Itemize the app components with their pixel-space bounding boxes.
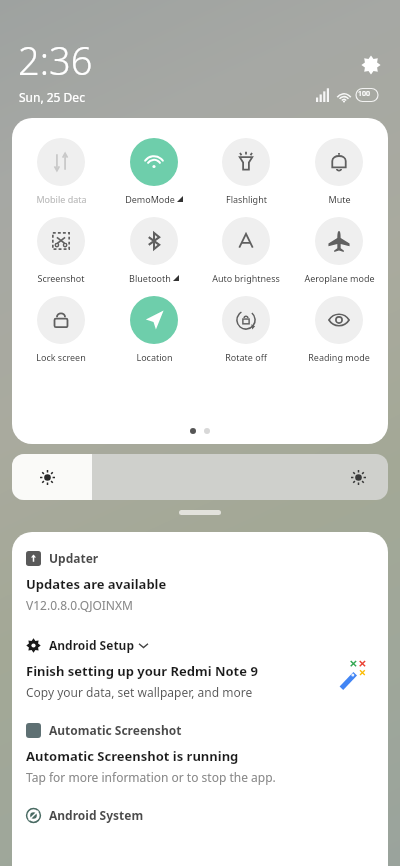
- button[interactable]: [12, 454, 388, 500]
- staticText: Automatic Screenshot is running: [26, 747, 239, 765]
- staticText: Auto brightness: [212, 272, 280, 284]
- button[interactable]: Mobile data: [17, 136, 105, 207]
- staticText: 100: [358, 89, 371, 99]
- staticText: V12.0.8.0.QJOINXM: [26, 597, 133, 613]
- button[interactable]: Updater: [12, 532, 388, 613]
- button[interactable]: Mute: [295, 136, 383, 207]
- staticText: Copy your data, set wallpaper, and more: [26, 684, 253, 700]
- staticText: Finish setting up your Redmi Note 9: [26, 662, 258, 680]
- staticText: Automatic Screenshot: [49, 722, 182, 738]
- staticText: Tap for more information or to stop the …: [26, 769, 276, 785]
- staticText: Location: [136, 351, 173, 363]
- staticText: Flashlight: [226, 193, 267, 205]
- staticText: Android Setup: [49, 637, 134, 653]
- button[interactable]: Automatic Screenshot: [12, 722, 388, 785]
- button[interactable]: Android Setup: [12, 637, 388, 700]
- staticText: Screenshot: [37, 272, 85, 284]
- button[interactable]: Rotate off: [202, 294, 290, 365]
- staticText: Sun, 25 Dec: [19, 89, 85, 105]
- button[interactable]: Aeroplane mode: [295, 215, 383, 286]
- staticText: Bluetooth: [129, 272, 171, 284]
- button[interactable]: Lock screen: [17, 294, 105, 365]
- staticText: DemoMode: [125, 193, 175, 205]
- button[interactable]: Screenshot: [17, 215, 105, 286]
- staticText: Reading mode: [308, 351, 370, 363]
- button[interactable]: Auto brightness: [202, 215, 290, 286]
- staticText: Lock screen: [36, 351, 86, 363]
- button[interactable]: Flashlight: [202, 136, 290, 207]
- button[interactable]: DemoMode: [110, 136, 198, 207]
- staticText: Rotate off: [225, 351, 267, 363]
- staticText: Updater: [49, 550, 99, 566]
- button[interactable]: Android System: [12, 807, 388, 823]
- button[interactable]: Reading mode: [295, 294, 383, 365]
- staticText: Mobile data: [36, 193, 87, 205]
- button[interactable]: Settings: [358, 52, 384, 78]
- staticText: Aeroplane mode: [304, 272, 375, 284]
- staticText: Android System: [49, 807, 144, 823]
- staticText: 2:36: [18, 34, 93, 86]
- button[interactable]: Location: [110, 294, 198, 365]
- staticText: Updates are available: [26, 575, 167, 593]
- button[interactable]: Bluetooth: [110, 215, 198, 286]
- staticText: Mute: [328, 193, 351, 205]
